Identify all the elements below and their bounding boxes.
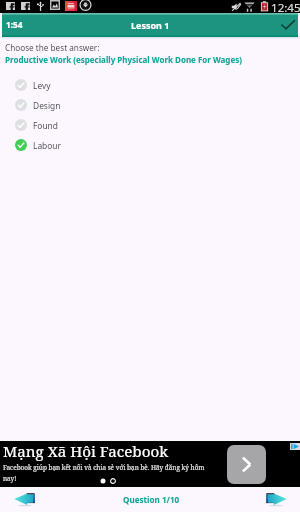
staticText: Labour bbox=[33, 140, 61, 151]
button[interactable]: Previous question bbox=[10, 489, 40, 509]
staticText: Levy bbox=[33, 80, 51, 91]
staticText: nay! bbox=[3, 474, 17, 483]
button[interactable]: Open ad bbox=[227, 445, 266, 484]
staticText: Facebook giúp bạn kết nối và chia sẻ với… bbox=[3, 463, 205, 472]
staticText: 12:45 bbox=[271, 0, 300, 13]
button[interactable]: Labour bbox=[0, 135, 300, 155]
staticText: Choose the best answer: bbox=[5, 42, 100, 53]
staticText: Found bbox=[33, 120, 58, 131]
staticText: 1:54 bbox=[6, 19, 23, 30]
staticText: Productive Work (especially Physical Wor… bbox=[5, 54, 242, 65]
button[interactable]: Found bbox=[0, 115, 300, 135]
button[interactable]: Submit answer bbox=[278, 15, 298, 35]
button[interactable]: Design bbox=[0, 95, 300, 115]
staticText: Question 1/10 bbox=[123, 494, 180, 505]
button[interactable]: Mạng Xã Hội Facebook bbox=[0, 441, 300, 487]
staticText: Mạng Xã Hội Facebook bbox=[3, 441, 169, 462]
staticText: Lesson 1 bbox=[131, 19, 170, 31]
staticText: Design bbox=[33, 100, 61, 111]
button[interactable]: Next question bbox=[261, 489, 291, 509]
button[interactable]: Levy bbox=[0, 75, 300, 95]
